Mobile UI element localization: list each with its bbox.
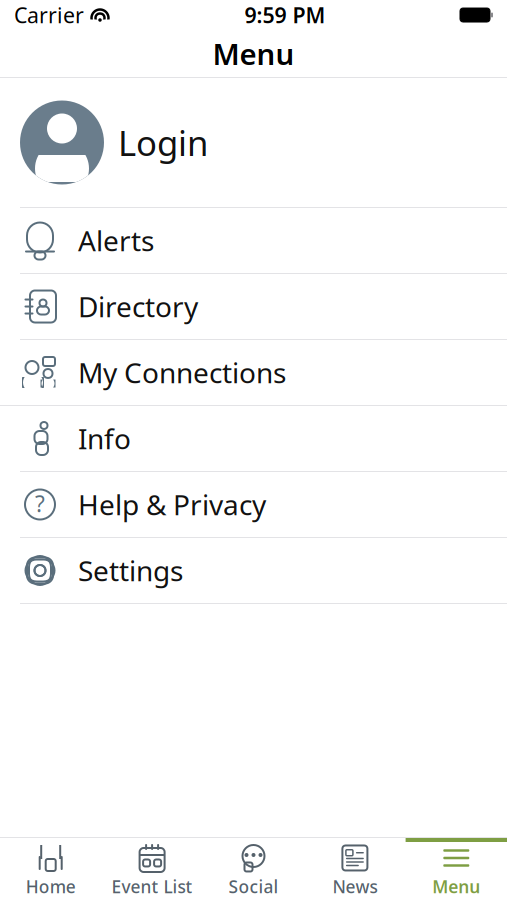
button[interactable]: Menu [406,838,507,900]
staticText: Directory [78,288,198,325]
button[interactable]: Home [0,838,101,900]
staticText: Login [118,119,208,165]
staticText: My Connections [78,354,286,391]
staticText: Menu [432,875,480,898]
staticText: Home [26,875,76,898]
staticText: Social [228,875,278,898]
button[interactable]: Social [203,838,304,900]
staticText: Help & Privacy [78,486,266,523]
button[interactable]: Directory [0,274,507,339]
staticText: News [332,875,377,898]
button[interactable]: News [304,838,406,900]
button[interactable]: My Connections [0,340,507,405]
staticText: Settings [78,552,183,589]
button[interactable]: Alerts [0,208,507,273]
button[interactable]: Settings [0,538,507,603]
button[interactable]: Login [0,78,507,207]
staticText: Alerts [78,222,154,259]
staticText: Menu [212,34,294,73]
staticText: Info [78,420,131,457]
button[interactable]: Event List [101,838,203,900]
staticText: Event List [112,875,193,898]
button[interactable]: ? [0,472,507,537]
staticText: ? [35,488,45,518]
button[interactable]: Info [0,406,507,471]
staticText: Carrier [14,1,84,29]
staticText: 9:59 PM [244,1,325,29]
